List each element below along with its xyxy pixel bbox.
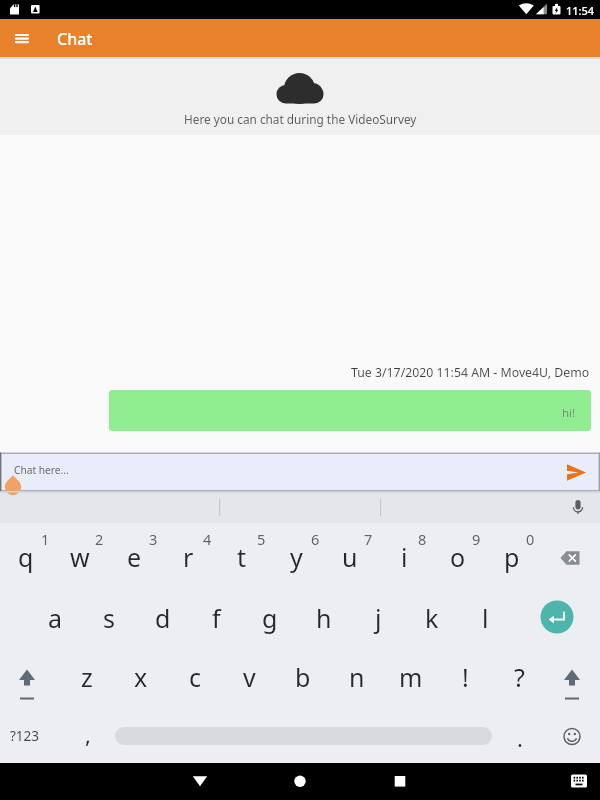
button[interactable]: [8, 658, 46, 694]
staticText: ,: [85, 719, 91, 749]
staticText: j: [375, 601, 382, 635]
staticText: Tue 3/17/2020 11:54 AM - Move4U, Demo: [351, 364, 590, 381]
staticText: l: [482, 601, 489, 635]
button[interactable]: i: [382, 539, 426, 575]
staticText: a: [48, 601, 63, 635]
staticText: r: [183, 540, 194, 574]
button[interactable]: h: [302, 600, 346, 636]
button[interactable]: y: [274, 539, 318, 575]
staticText: h: [316, 601, 332, 635]
staticText: !: [462, 660, 469, 694]
button[interactable]: b: [281, 659, 325, 695]
button[interactable]: x: [119, 659, 163, 695]
staticText: o: [450, 540, 466, 574]
button[interactable]: ?123: [10, 723, 52, 749]
staticText: ?: [514, 660, 525, 694]
staticText: ?123: [10, 727, 40, 745]
staticText: 4: [203, 529, 212, 549]
button[interactable]: g: [248, 600, 292, 636]
button[interactable]: t: [220, 539, 264, 575]
button[interactable]: [558, 458, 592, 486]
button[interactable]: f: [194, 600, 238, 636]
staticText: 8: [418, 529, 427, 549]
button[interactable]: k: [410, 600, 454, 636]
staticText: k: [425, 601, 439, 635]
staticText: 7: [364, 529, 373, 549]
button[interactable]: [564, 768, 594, 796]
staticText: y: [290, 540, 303, 574]
staticText: Chat here...: [14, 463, 69, 477]
button[interactable]: z: [65, 659, 109, 695]
button[interactable]: j: [356, 600, 400, 636]
staticText: 6: [311, 529, 320, 549]
staticText: c: [189, 660, 202, 694]
button[interactable]: [553, 658, 591, 694]
button[interactable]: [0, 453, 600, 491]
staticText: n: [349, 660, 365, 694]
staticText: 2: [95, 529, 104, 549]
button[interactable]: c: [173, 659, 217, 695]
button[interactable]: a: [33, 600, 77, 636]
staticText: s: [103, 601, 115, 635]
staticText: 9: [472, 529, 481, 549]
button[interactable]: [539, 597, 575, 633]
staticText: t: [237, 540, 247, 574]
staticText: Chat: [57, 28, 93, 50]
button[interactable]: [8, 26, 38, 50]
button[interactable]: ,: [76, 719, 100, 749]
staticText: 0: [526, 529, 535, 549]
staticText: 1: [41, 529, 50, 549]
button[interactable]: ?: [497, 659, 541, 695]
button[interactable]: l: [463, 600, 507, 636]
staticText: i: [401, 540, 408, 574]
staticText: p: [504, 540, 520, 574]
staticText: 11:54: [566, 3, 595, 18]
staticText: 3: [149, 529, 158, 549]
button[interactable]: [380, 765, 420, 798]
button[interactable]: e: [112, 539, 156, 575]
button[interactable]: u: [328, 539, 372, 575]
button[interactable]: w: [58, 539, 102, 575]
staticText: w: [70, 540, 90, 574]
button[interactable]: p: [490, 539, 534, 575]
button[interactable]: d: [141, 600, 185, 636]
staticText: .: [517, 723, 523, 753]
staticText: hi!: [562, 405, 576, 421]
staticText: g: [262, 601, 278, 635]
button[interactable]: o: [436, 539, 480, 575]
staticText: q: [18, 540, 34, 574]
button[interactable]: [556, 718, 590, 752]
staticText: b: [295, 660, 311, 694]
staticText: f: [212, 601, 221, 635]
staticText: u: [342, 540, 358, 574]
staticText: m: [399, 660, 423, 694]
button[interactable]: v: [227, 659, 271, 695]
staticText: Here you can chat during the VideoSurvey: [184, 111, 417, 127]
button[interactable]: .: [508, 723, 532, 753]
button[interactable]: !: [443, 659, 487, 695]
button[interactable]: m: [389, 659, 433, 695]
button[interactable]: [280, 765, 320, 798]
staticText: z: [81, 660, 93, 694]
staticText: 5: [257, 529, 266, 549]
button[interactable]: [564, 496, 592, 520]
staticText: v: [243, 660, 256, 694]
button[interactable]: [548, 540, 592, 576]
staticText: x: [134, 660, 148, 694]
button[interactable]: n: [335, 659, 379, 695]
button[interactable]: s: [87, 600, 131, 636]
staticText: e: [127, 540, 142, 574]
staticText: d: [155, 601, 171, 635]
button[interactable]: r: [166, 539, 210, 575]
button[interactable]: q: [4, 539, 48, 575]
button[interactable]: [180, 765, 220, 798]
